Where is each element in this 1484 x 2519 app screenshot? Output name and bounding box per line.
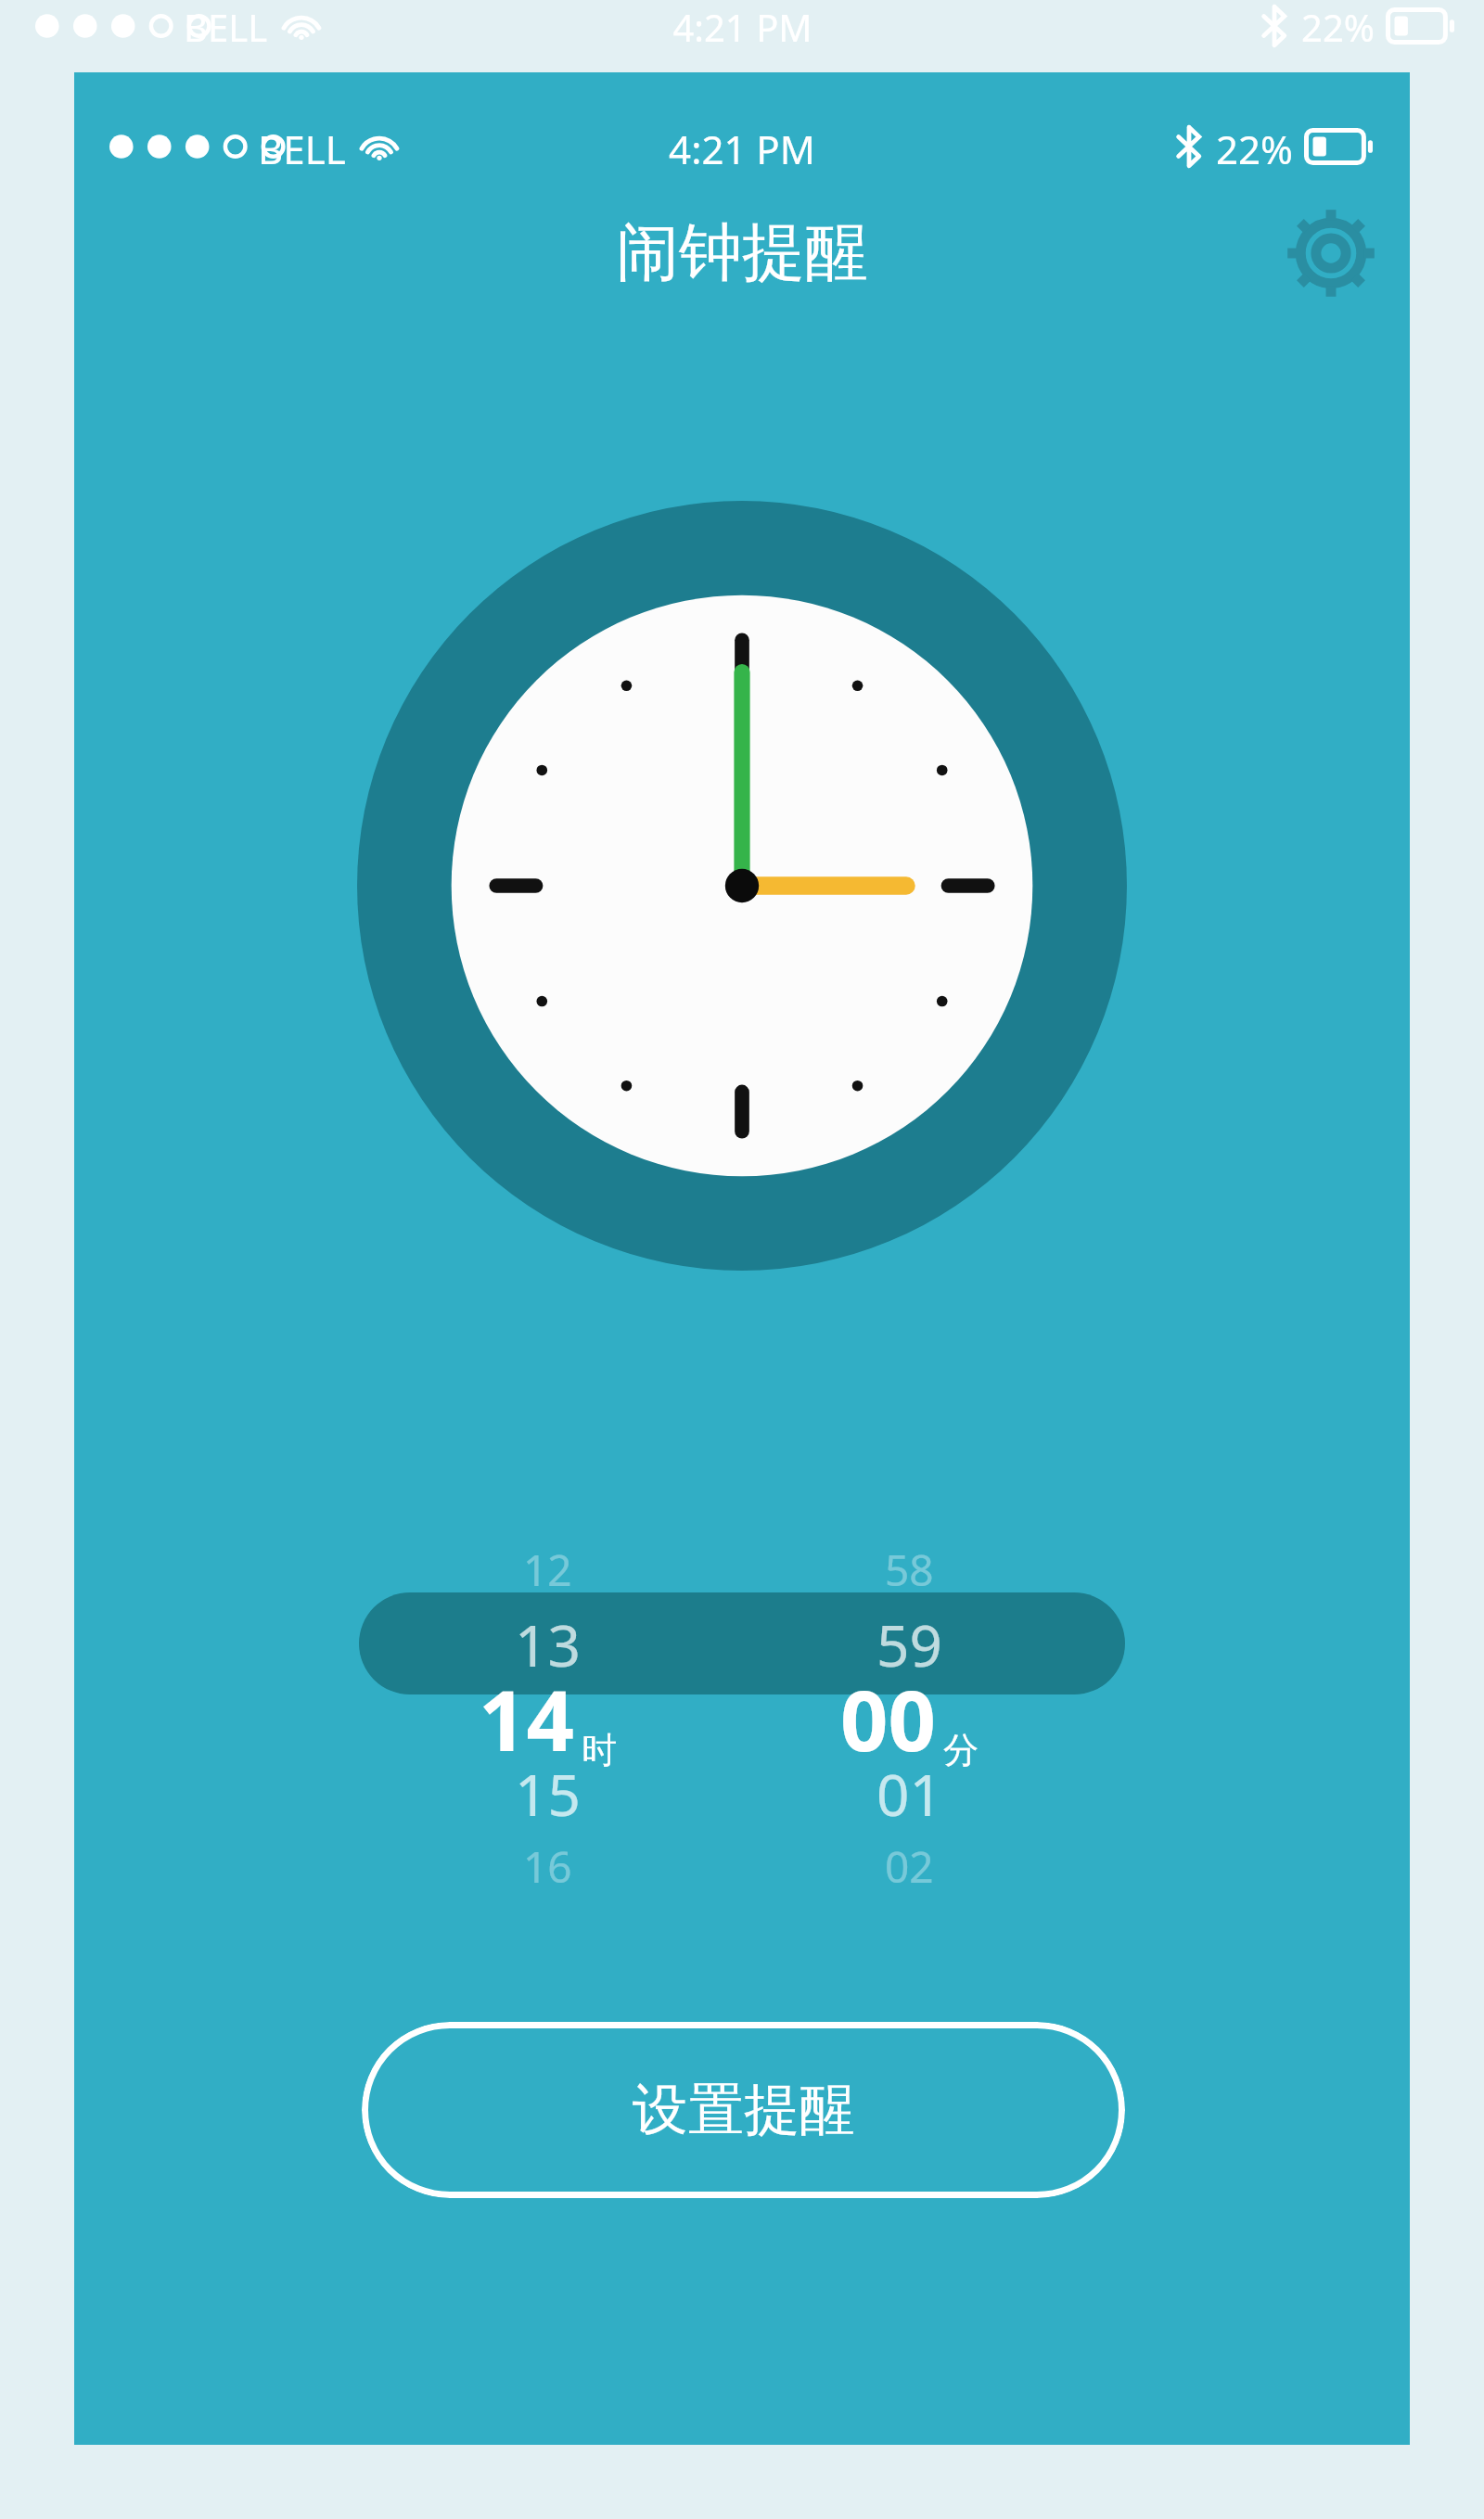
staticText: 16 <box>523 1837 572 1896</box>
staticText: 设置提醒 <box>633 2075 855 2145</box>
staticText: 22% <box>1216 122 1293 175</box>
staticText: 4:21 PM <box>672 2 812 52</box>
staticText: 00 <box>840 1662 936 1776</box>
staticText: 4:21 PM <box>669 122 815 175</box>
staticText: 时 <box>582 1728 617 1772</box>
staticText: 22% <box>1301 2 1375 52</box>
staticText: BELL <box>258 122 346 171</box>
staticText: 14 <box>479 1662 574 1776</box>
staticText: 12 <box>523 1541 572 1599</box>
staticText: 分 <box>943 1728 979 1772</box>
staticText: 02 <box>885 1837 934 1896</box>
button[interactable] <box>359 1592 1125 1694</box>
staticText: 59 <box>876 1605 942 1683</box>
staticText: 01 <box>876 1755 942 1833</box>
staticText: 58 <box>885 1541 934 1599</box>
staticText: 闹钟提醒 <box>616 213 868 293</box>
staticText: 13 <box>515 1605 581 1683</box>
staticText: BELL <box>184 2 268 50</box>
button[interactable]: 设置提醒 <box>362 2022 1125 2198</box>
button[interactable]: Settings <box>1271 193 1391 313</box>
staticText: 15 <box>515 1755 581 1833</box>
